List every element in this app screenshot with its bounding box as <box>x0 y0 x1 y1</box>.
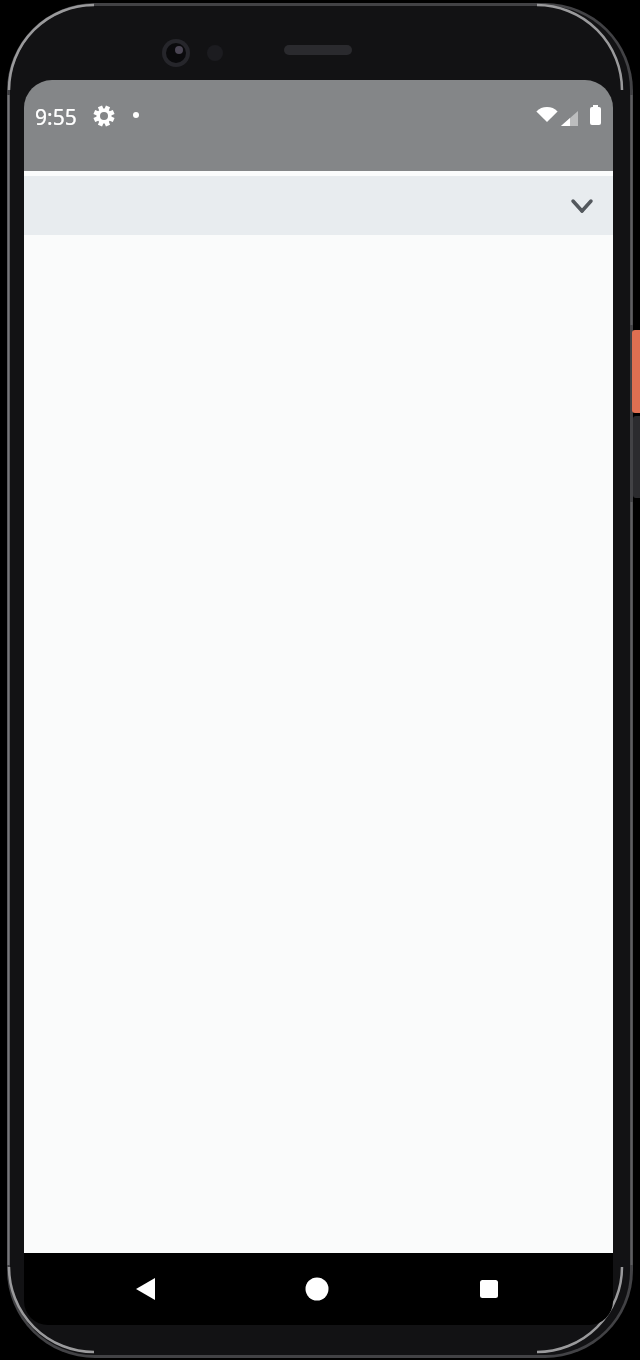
button[interactable] <box>295 1267 339 1311</box>
staticText: 9:55 <box>35 103 77 171</box>
button[interactable] <box>467 1267 511 1311</box>
button[interactable] <box>124 1267 168 1311</box>
button[interactable] <box>24 176 613 235</box>
